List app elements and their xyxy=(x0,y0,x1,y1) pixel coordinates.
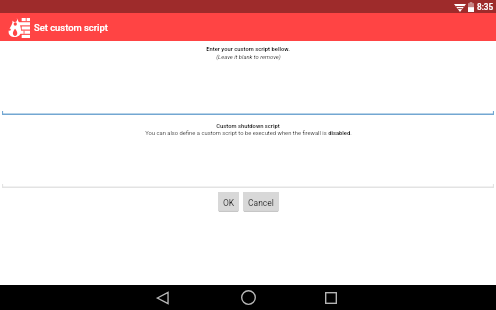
staticText: 8:35 xyxy=(477,2,494,12)
staticText: Custom shutdown script xyxy=(216,123,280,130)
button[interactable]: Recents xyxy=(318,285,344,310)
staticText: Cancel xyxy=(248,198,274,208)
staticText: (Leave it blank to remove) xyxy=(216,54,281,61)
button[interactable]: Back xyxy=(150,285,176,310)
staticText: Enter your custom script bellow. xyxy=(206,46,290,53)
staticText: You can also define a custom script to b… xyxy=(145,130,352,137)
button[interactable]: Home xyxy=(235,285,261,310)
button[interactable]: OK xyxy=(218,192,239,213)
button[interactable]: Cancel xyxy=(243,192,279,213)
button[interactable]: Set custom script xyxy=(0,13,496,41)
staticText: Set custom script xyxy=(34,22,108,33)
staticText: OK xyxy=(223,198,235,208)
